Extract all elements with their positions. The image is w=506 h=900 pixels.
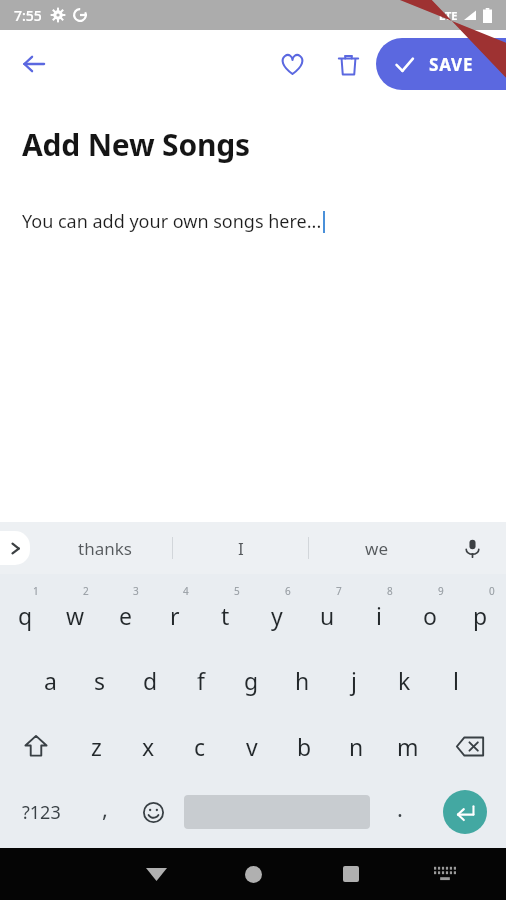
button[interactable]: Voice input [452,528,492,568]
button[interactable]: b [278,720,330,772]
staticText: s [94,665,106,696]
button[interactable]: x [122,720,174,772]
button[interactable]: Home [205,848,302,900]
staticText: o [423,600,437,631]
staticText: j [351,665,357,696]
button[interactable]: n [330,720,382,772]
staticText: p [473,600,488,631]
button[interactable]: SAVE [376,38,506,90]
staticText: , [102,793,108,823]
staticText: we [365,537,388,560]
button[interactable]: r [150,584,200,640]
button[interactable]: h [277,654,328,706]
button[interactable]: Enter [423,784,506,840]
staticText: q [18,600,33,631]
staticText: 3 [133,584,139,598]
staticText: v [246,731,258,762]
staticText: 9 [438,584,444,598]
staticText: SAVE [429,53,474,76]
staticText: z [91,731,102,762]
staticText: 8 [387,584,393,598]
staticText: i [376,600,382,631]
button[interactable]: o [404,584,455,640]
staticText: ?123 [22,800,61,825]
staticText: y [271,600,283,631]
button[interactable]: v [226,720,278,772]
button[interactable]: t [200,584,251,640]
button[interactable]: Back [108,848,205,900]
button[interactable]: Back [10,40,58,88]
staticText: 1 [33,584,39,598]
staticText: b [297,731,312,762]
staticText: e [119,600,132,631]
staticText: 7:55 [14,6,42,25]
button[interactable]: c [174,720,226,772]
button[interactable]: p [455,584,506,640]
button[interactable]: More suggestions [0,531,30,565]
staticText: I [238,537,244,560]
button[interactable]: y [251,584,302,640]
button[interactable]: Shift [0,720,71,772]
staticText: k [398,665,411,696]
button[interactable]: g [226,654,277,706]
staticText: 0 [489,584,495,598]
staticText: c [194,731,206,762]
button[interactable]: . [376,784,423,840]
staticText: u [320,600,335,631]
staticText: 7 [336,584,342,598]
button[interactable]: Delete [324,40,372,88]
button[interactable]: we [309,522,444,574]
button[interactable]: ?123 [0,784,82,840]
staticText: m [397,731,419,762]
button[interactable]: i [353,584,404,640]
button[interactable]: f [175,654,226,706]
button[interactable]: k [379,654,430,706]
staticText: Add New Songs [22,124,250,165]
staticText: thanks [78,537,132,560]
button[interactable]: q [0,584,50,640]
staticText: g [244,665,259,696]
button[interactable]: e [100,584,150,640]
button[interactable]: Favorite [268,40,316,88]
staticText: You can add your own songs here... [22,209,322,234]
staticText: LTE [439,8,458,23]
button[interactable]: z [71,720,122,772]
button[interactable]: s [75,654,125,706]
staticText: 6 [285,584,291,598]
button[interactable]: Emoji [128,784,178,840]
button[interactable]: d [125,654,175,706]
staticText: x [142,731,155,762]
staticText: 2 [83,584,89,598]
button[interactable]: thanks [38,522,172,574]
staticText: t [221,600,230,631]
staticText: l [453,665,459,696]
button[interactable]: I [173,522,308,574]
staticText: 4 [183,584,189,598]
staticText: r [170,600,180,631]
button[interactable]: w [50,584,100,640]
button[interactable]: l [430,654,481,706]
button[interactable]: Backspace [434,720,506,772]
staticText: w [66,600,85,631]
button[interactable]: a [25,654,75,706]
staticText: 5 [234,584,240,598]
staticText: f [197,665,205,696]
button[interactable]: , [82,784,128,840]
staticText: h [295,665,310,696]
staticText: n [349,731,364,762]
staticText: d [143,665,158,696]
button[interactable]: Hide keyboard [399,848,491,900]
button[interactable]: j [328,654,379,706]
staticText: a [44,665,57,696]
staticText: . [397,793,403,823]
button[interactable]: Space [178,784,376,840]
button[interactable]: Recents [302,848,399,900]
button[interactable]: u [302,584,353,640]
button[interactable]: m [382,720,434,772]
